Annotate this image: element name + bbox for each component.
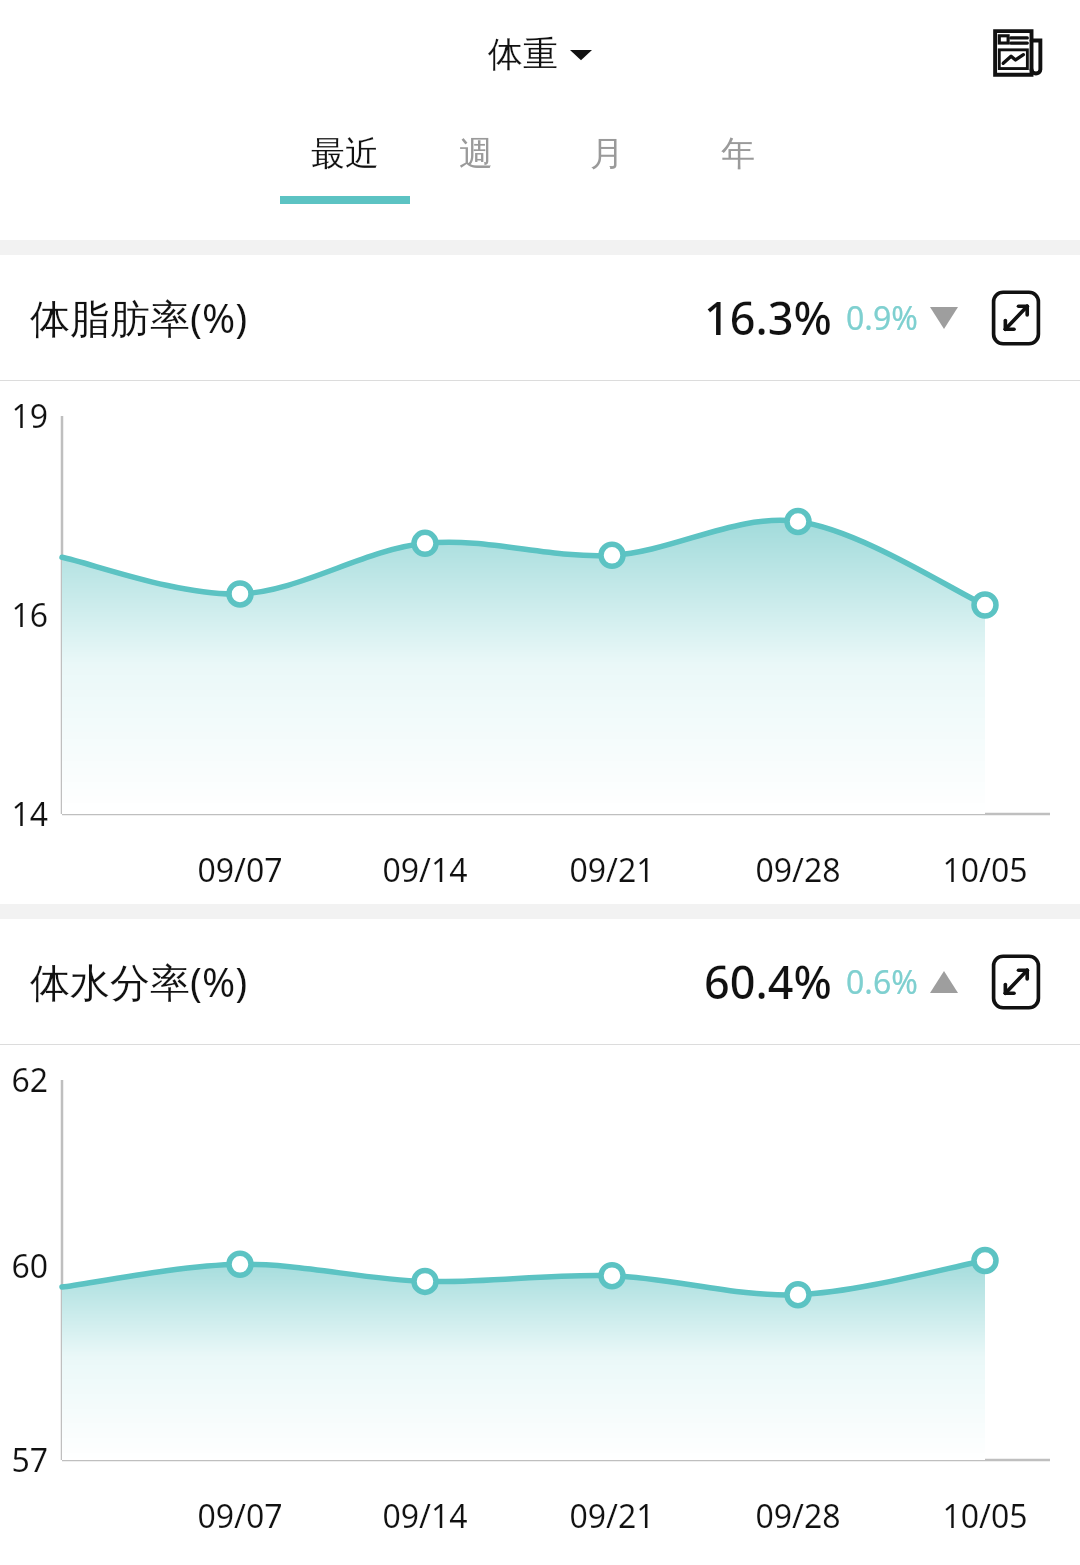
button[interactable]: Expand chart bbox=[980, 282, 1052, 354]
button[interactable]: 月 bbox=[542, 108, 672, 240]
staticText: 体重 bbox=[488, 32, 558, 76]
button[interactable]: Report bbox=[982, 18, 1054, 90]
button[interactable]: 年 bbox=[673, 108, 803, 240]
button[interactable]: 体脂肪率(%) bbox=[0, 255, 1080, 380]
staticText: 09/14 bbox=[377, 1494, 473, 1538]
staticText: 09/28 bbox=[750, 1494, 846, 1538]
staticText: 62 bbox=[0, 1058, 48, 1102]
staticText: 09/21 bbox=[564, 1494, 660, 1538]
staticText: 体水分率(%) bbox=[30, 954, 248, 1009]
staticText: 10/05 bbox=[937, 1494, 1033, 1538]
staticText: 60.4% bbox=[704, 951, 832, 1012]
button[interactable]: 週 bbox=[411, 108, 541, 240]
staticText: 0.6% bbox=[846, 960, 918, 1004]
staticText: 16 bbox=[0, 593, 48, 637]
staticText: 57 bbox=[0, 1438, 48, 1482]
staticText: 09/14 bbox=[377, 848, 473, 892]
staticText: 09/28 bbox=[750, 848, 846, 892]
staticText: 60 bbox=[0, 1244, 48, 1288]
staticText: 09/07 bbox=[192, 1494, 288, 1538]
staticText: 最近 bbox=[311, 132, 379, 175]
button[interactable]: 最近 bbox=[280, 108, 410, 240]
staticText: 週 bbox=[459, 132, 493, 175]
staticText: 年 bbox=[721, 132, 755, 175]
button[interactable]: 体水分率(%) bbox=[0, 919, 1080, 1044]
staticText: 0.9% bbox=[846, 296, 918, 340]
staticText: 月 bbox=[590, 132, 624, 175]
staticText: 19 bbox=[0, 394, 48, 438]
staticText: 09/07 bbox=[192, 848, 288, 892]
button[interactable]: Expand chart bbox=[980, 946, 1052, 1018]
staticText: 体脂肪率(%) bbox=[30, 290, 248, 345]
staticText: 09/21 bbox=[564, 848, 660, 892]
staticText: 16.3% bbox=[704, 287, 832, 348]
staticText: 10/05 bbox=[937, 848, 1033, 892]
button[interactable]: 体重 bbox=[488, 32, 592, 76]
staticText: 14 bbox=[0, 792, 48, 836]
